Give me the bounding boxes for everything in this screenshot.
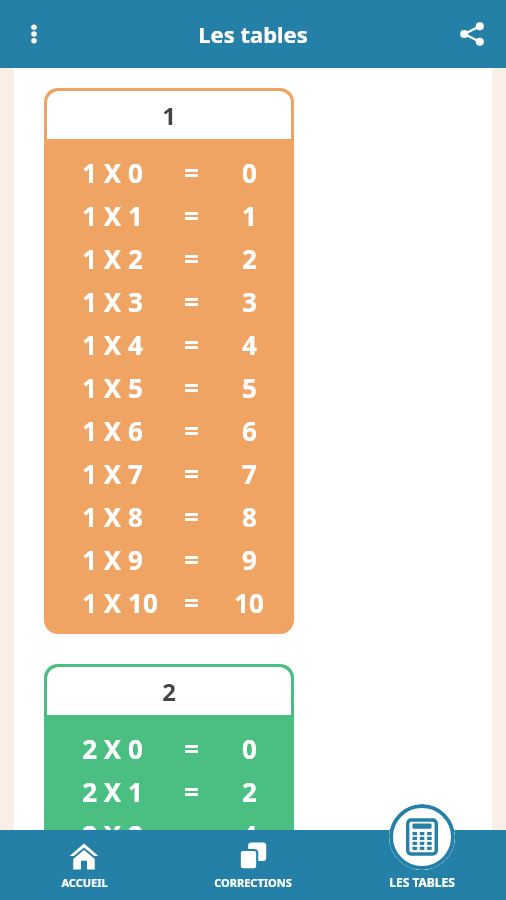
staticText: LES TABLES xyxy=(389,874,455,890)
staticText: = xyxy=(184,370,199,405)
staticText: 0 xyxy=(242,155,257,190)
staticText: 1 X 9 xyxy=(82,542,143,577)
staticText: = xyxy=(184,499,199,534)
staticText: 1 X 6 xyxy=(82,413,143,448)
staticText: 1 X 5 xyxy=(82,370,143,405)
staticText: = xyxy=(184,198,199,233)
button[interactable]: More options xyxy=(8,8,60,60)
staticText: CORRECTIONS xyxy=(214,875,292,890)
staticText: = xyxy=(184,241,199,276)
staticText: 2 xyxy=(242,774,257,809)
staticText: 8 xyxy=(242,499,257,534)
staticText: = xyxy=(184,542,199,577)
button[interactable]: CORRECTIONS xyxy=(168,835,337,896)
staticText: = xyxy=(184,774,199,809)
staticText: 1 X 0 xyxy=(82,155,143,190)
staticText: 2 X 3 xyxy=(82,860,143,895)
staticText: = xyxy=(184,817,199,852)
staticText: 9 xyxy=(242,542,257,577)
staticText: 10 xyxy=(234,585,264,620)
staticText: = xyxy=(184,731,199,766)
staticText: = xyxy=(184,413,199,448)
staticText: 4 xyxy=(242,327,257,362)
staticText: 1 X 4 xyxy=(82,327,143,362)
staticText: 1 X 2 xyxy=(82,241,143,276)
staticText: Les tables xyxy=(198,19,308,49)
staticText: 6 xyxy=(242,413,257,448)
staticText: = xyxy=(184,585,199,620)
staticText: 2 X 2 xyxy=(82,817,143,852)
staticText: 1 X 10 xyxy=(82,585,158,620)
staticText: 1 xyxy=(162,99,176,132)
button[interactable]: LES TABLES xyxy=(338,804,506,900)
staticText: = xyxy=(184,327,199,362)
staticText: 6 xyxy=(242,860,257,895)
staticText: = xyxy=(184,284,199,319)
staticText: 1 X 8 xyxy=(82,499,143,534)
staticText: = xyxy=(184,155,199,190)
staticText: 0 xyxy=(242,731,257,766)
staticText: 7 xyxy=(242,456,257,491)
staticText: 1 X 7 xyxy=(82,456,143,491)
staticText: 2 X 1 xyxy=(82,774,143,809)
staticText: 1 X 3 xyxy=(82,284,143,319)
staticText: 1 X 1 xyxy=(82,198,143,233)
staticText: 2 xyxy=(242,241,257,276)
staticText: ACCUEIL xyxy=(61,875,108,890)
staticText: 5 xyxy=(242,370,257,405)
staticText: = xyxy=(184,456,199,491)
button[interactable]: 2 xyxy=(44,664,294,900)
button[interactable]: 1 xyxy=(44,88,294,634)
staticText: 4 xyxy=(242,817,257,852)
button[interactable]: Share xyxy=(446,8,498,60)
staticText: 1 xyxy=(242,198,257,233)
button[interactable]: ACCUEIL xyxy=(0,835,168,896)
staticText: 2 xyxy=(162,675,176,708)
staticText: 2 X 0 xyxy=(82,731,143,766)
staticText: 3 xyxy=(242,284,257,319)
